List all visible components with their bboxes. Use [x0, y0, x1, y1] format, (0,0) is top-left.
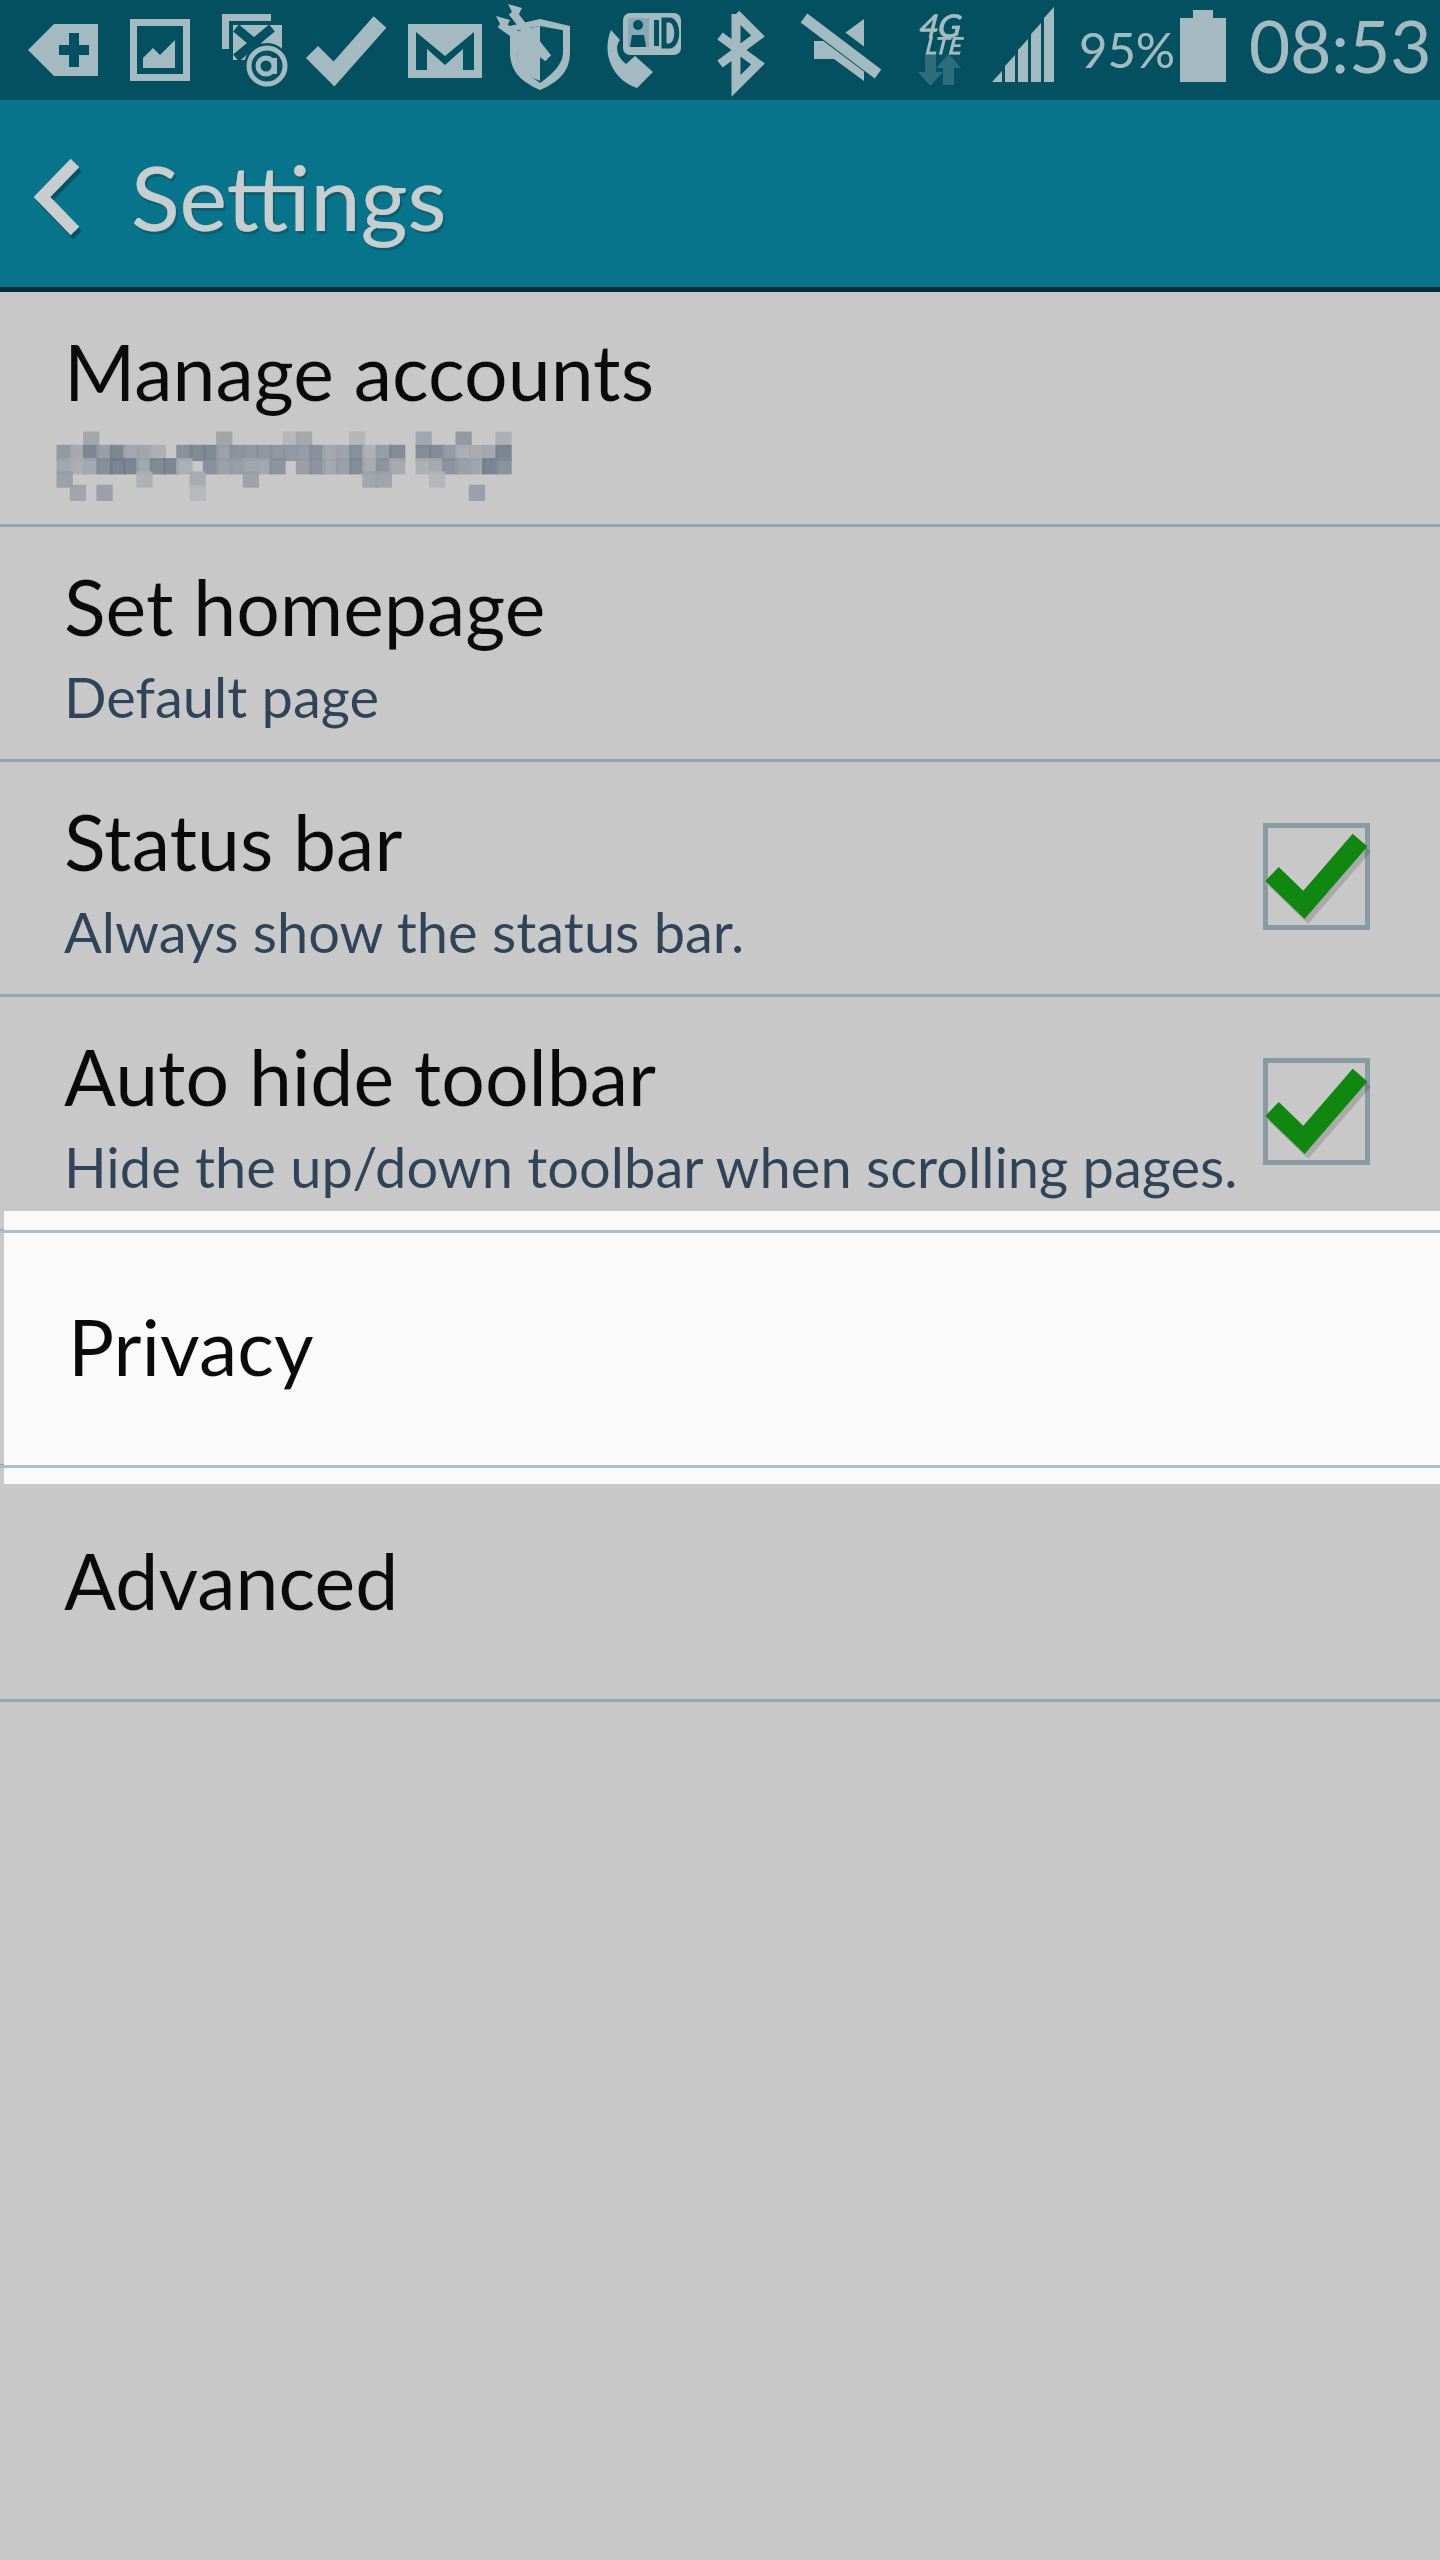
staticText: Auto hide toolbar: [64, 1030, 657, 1122]
staticText: 4G: [918, 6, 959, 43]
staticText: Settings: [133, 145, 449, 253]
staticText: Default page: [64, 663, 380, 730]
button[interactable]: Manage accounts: [0, 292, 1440, 524]
button[interactable]: Toggle Status bar: [1263, 823, 1370, 930]
staticText: Hide the up/down toolbar when scrolling …: [64, 1133, 1238, 1200]
staticText: Advanced: [64, 1534, 399, 1626]
staticText: LTE: [924, 31, 961, 59]
staticText: Set homepage: [64, 560, 546, 652]
staticText: 08:53: [1249, 3, 1432, 88]
button[interactable]: Privacy: [4, 1211, 1440, 1484]
button[interactable]: Auto hide toolbar: [0, 997, 1440, 1229]
staticText: Always show the status bar.: [64, 898, 745, 965]
staticText: Settings: [131, 142, 447, 250]
button[interactable]: Advanced: [0, 1467, 1440, 1699]
staticText: 95%: [1079, 20, 1176, 79]
button[interactable]: Set homepage: [0, 527, 1440, 759]
staticText: Status bar: [64, 795, 403, 887]
button[interactable]: Toggle Auto hide toolbar: [1263, 1058, 1370, 1165]
staticText: Manage accounts: [64, 325, 655, 417]
button[interactable]: Back: [0, 100, 131, 287]
staticText: Privacy: [68, 1300, 314, 1392]
button[interactable]: Status bar: [0, 762, 1440, 994]
